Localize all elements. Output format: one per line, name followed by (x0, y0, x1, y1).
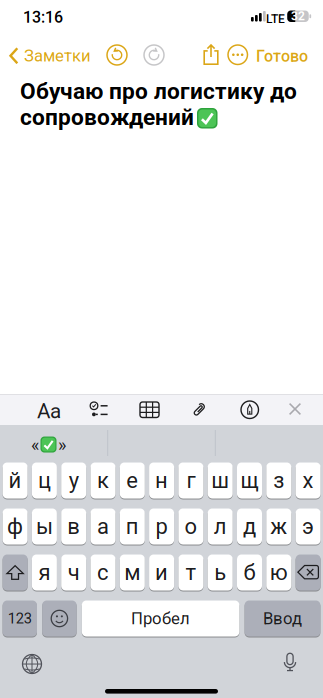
button[interactable]: ш (208, 462, 233, 499)
button[interactable]: Delete (296, 554, 321, 591)
staticText: 32 (291, 9, 305, 23)
button[interactable]: з (266, 462, 291, 499)
button[interactable]: Markup (241, 401, 258, 418)
button[interactable]: г (178, 462, 203, 499)
button[interactable]: Table (140, 402, 159, 417)
button[interactable]: ц (32, 462, 57, 499)
button[interactable]: т (178, 554, 203, 591)
staticText: Ввод (263, 609, 302, 628)
staticText: LTE (266, 12, 285, 26)
button[interactable]: м (120, 554, 145, 591)
staticText: о (184, 514, 197, 539)
button[interactable]: в (61, 508, 86, 545)
button[interactable]: Ввод (245, 600, 320, 637)
staticText: и (155, 560, 168, 585)
button[interactable]: р (149, 508, 174, 545)
staticText: п (126, 514, 139, 539)
staticText: 123 (8, 610, 32, 627)
staticText: ч (68, 560, 80, 585)
button[interactable]: Attach (194, 401, 204, 417)
button[interactable]: й (3, 462, 28, 499)
staticText: Готово (256, 47, 308, 66)
button[interactable]: п (120, 508, 145, 545)
staticText: г (186, 468, 195, 493)
button[interactable]: н (149, 462, 174, 499)
button[interactable]: Next keyboard (17, 649, 47, 679)
button[interactable]: 123 (3, 600, 37, 637)
button[interactable]: Share (202, 44, 220, 65)
staticText: ю (270, 560, 288, 585)
staticText: р (156, 514, 168, 539)
staticText: Aa (37, 399, 61, 423)
button[interactable]: а (90, 508, 115, 545)
button[interactable]: «✅» (31, 434, 66, 455)
staticText: щ (240, 468, 258, 493)
button[interactable]: е (120, 462, 145, 499)
button[interactable]: б (237, 554, 262, 591)
button[interactable]: к (90, 462, 115, 499)
button[interactable]: More (228, 45, 247, 64)
button[interactable]: Redo (144, 45, 164, 65)
staticText: л (214, 514, 227, 539)
staticText: е (126, 468, 138, 493)
button[interactable]: Dismiss keyboard (289, 403, 301, 415)
staticText: э (302, 514, 314, 539)
staticText: 13:16 (23, 8, 63, 27)
staticText: ф (7, 514, 23, 539)
button[interactable]: Shift (3, 554, 28, 591)
button[interactable]: л (208, 508, 233, 545)
staticText: я (38, 560, 50, 585)
staticText: а (97, 514, 109, 539)
staticText: ы (36, 514, 53, 539)
button[interactable]: э (296, 508, 321, 545)
button[interactable]: Dictate (280, 651, 300, 675)
button[interactable]: ы (32, 508, 57, 545)
button[interactable]: ж (266, 508, 291, 545)
staticText: с (97, 560, 109, 585)
button[interactable]: Emoji (42, 600, 77, 637)
staticText: й (9, 468, 22, 493)
staticText: » (58, 434, 66, 455)
button[interactable]: Заметки (9, 46, 91, 65)
button[interactable]: Пробел (82, 600, 239, 637)
button[interactable]: ф (3, 508, 28, 545)
button[interactable]: щ (237, 462, 262, 499)
staticText: з (273, 468, 284, 493)
button[interactable]: х (296, 462, 321, 499)
button[interactable]: Checklist (90, 402, 108, 418)
button[interactable]: ч (61, 554, 86, 591)
button[interactable]: Undo (107, 45, 127, 65)
button[interactable]: у (61, 462, 86, 499)
staticText: сопровождений (20, 104, 194, 131)
button[interactable]: д (237, 508, 262, 545)
staticText: д (243, 514, 256, 539)
staticText: н (155, 468, 168, 493)
button[interactable]: ь (208, 554, 233, 591)
button[interactable]: Format (37, 399, 61, 423)
staticText: б (243, 560, 255, 585)
staticText: х (303, 468, 314, 493)
button[interactable]: я (32, 554, 57, 591)
staticText: Заметки (24, 46, 91, 65)
staticText: « (31, 434, 39, 455)
staticText: Обучаю про логистику до (20, 78, 297, 105)
button[interactable]: Готово (256, 47, 308, 66)
staticText: ш (211, 468, 229, 493)
button[interactable]: о (178, 508, 203, 545)
button[interactable]: ю (266, 554, 291, 591)
staticText: т (185, 560, 196, 585)
staticText: ц (38, 468, 51, 493)
button[interactable]: с (90, 554, 115, 591)
button[interactable]: и (149, 554, 174, 591)
staticText: м (124, 560, 140, 585)
staticText: у (69, 468, 79, 493)
staticText: Пробел (131, 609, 190, 628)
staticText: ь (214, 560, 226, 585)
staticText: к (97, 468, 109, 493)
staticText: в (67, 514, 80, 539)
staticText: ж (270, 514, 287, 539)
